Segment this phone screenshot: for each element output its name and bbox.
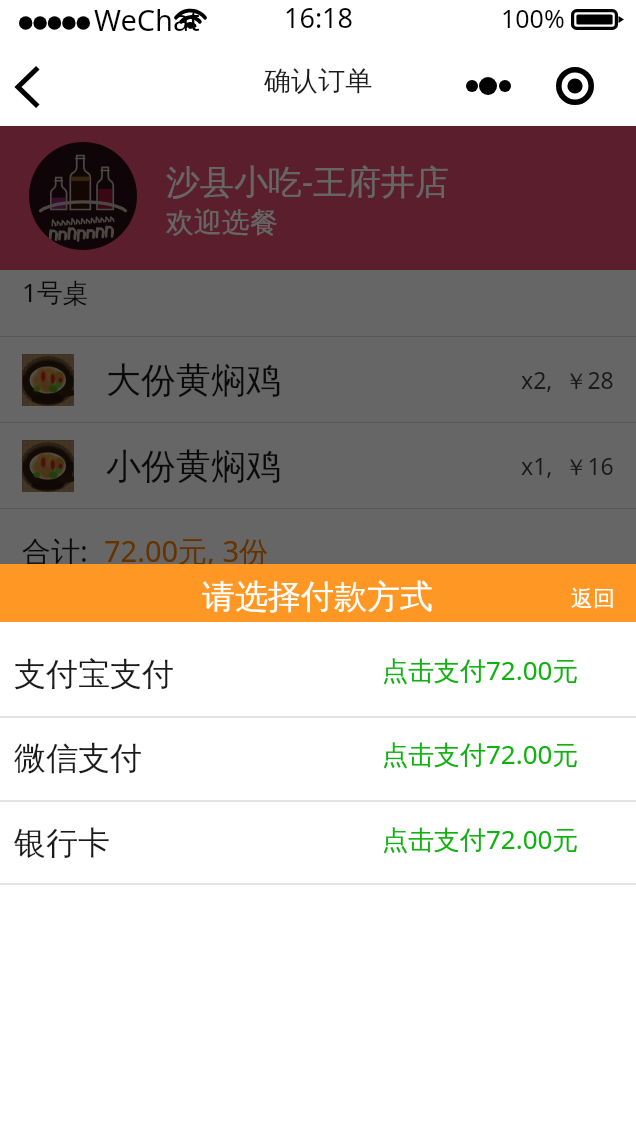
button[interactable]: 小份黄焖鸡	[0, 423, 636, 508]
staticText: WeChat	[94, 0, 200, 39]
staticText: 点击支付72.00元	[382, 821, 579, 857]
staticText: 沙县小吃-王府井店	[166, 158, 449, 204]
staticText: 100%	[501, 1, 565, 35]
button[interactable]: More options	[456, 60, 520, 112]
staticText: 返回	[571, 585, 615, 613]
button[interactable]: 支付宝支付	[0, 622, 636, 718]
staticText: 1号桌	[22, 274, 89, 310]
button[interactable]: 微信支付	[0, 718, 636, 802]
staticText: 点击支付72.00元	[382, 652, 579, 688]
staticText: 72.00元, 3份	[104, 531, 269, 571]
button[interactable]: 银行卡	[0, 802, 636, 885]
staticText: 大份黄焖鸡	[106, 358, 281, 402]
staticText: 请选择付款方式	[202, 576, 433, 618]
staticText: 欢迎选餐	[166, 205, 278, 240]
staticText: x1, ￥16	[521, 450, 614, 481]
staticText: 微信支付	[14, 738, 142, 778]
button[interactable]: Close	[548, 60, 601, 112]
button[interactable]: Back	[0, 57, 58, 115]
staticText: 确认订单	[264, 64, 372, 98]
staticText: 点击支付72.00元	[382, 736, 579, 772]
staticText: 合计:	[22, 531, 88, 571]
staticText: 银行卡	[14, 823, 110, 863]
button[interactable]: 大份黄焖鸡	[0, 337, 636, 422]
staticText: 16:18	[284, 0, 354, 36]
staticText: x2, ￥28	[521, 364, 614, 395]
staticText: 小份黄焖鸡	[106, 444, 281, 488]
button[interactable]: 返回	[556, 564, 630, 622]
staticText: 支付宝支付	[14, 654, 174, 694]
